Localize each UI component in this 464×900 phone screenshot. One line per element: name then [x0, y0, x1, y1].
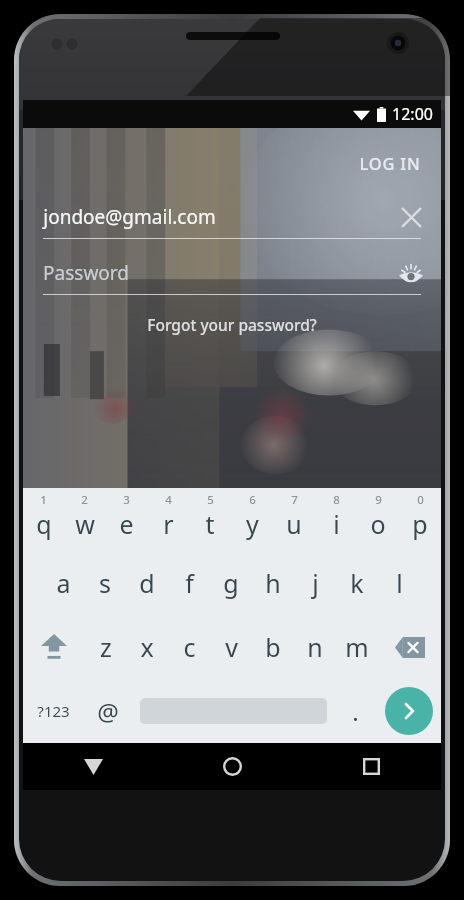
- button[interactable]: LOG IN: [343, 142, 437, 184]
- staticText: k: [350, 566, 364, 600]
- staticText: u: [286, 507, 302, 541]
- button[interactable]: Password: [23, 250, 441, 296]
- staticText: p: [412, 507, 428, 541]
- staticText: l: [396, 566, 403, 600]
- button[interactable]: Home: [163, 743, 302, 790]
- staticText: e: [119, 507, 134, 541]
- button[interactable]: n: [294, 615, 336, 679]
- staticText: 4: [165, 492, 172, 508]
- button[interactable]: x: [126, 615, 168, 679]
- staticText: m: [345, 630, 369, 664]
- staticText: o: [370, 507, 386, 541]
- button[interactable]: Recents: [302, 743, 441, 790]
- button[interactable]: d: [126, 551, 168, 615]
- button[interactable]: 1: [23, 488, 64, 551]
- staticText: s: [99, 566, 111, 600]
- button[interactable]: Go: [376, 679, 441, 743]
- button[interactable]: Shift: [23, 615, 85, 679]
- staticText: z: [100, 630, 112, 664]
- button[interactable]: Clear email: [389, 195, 433, 239]
- button[interactable]: z: [85, 615, 126, 679]
- staticText: ?123: [37, 701, 70, 721]
- button[interactable]: l: [378, 551, 420, 615]
- button[interactable]: 2: [64, 488, 105, 551]
- staticText: j: [312, 566, 319, 600]
- staticText: 3: [123, 492, 130, 508]
- staticText: 9: [375, 492, 382, 508]
- staticText: 8: [333, 492, 340, 508]
- staticText: b: [265, 630, 281, 664]
- button[interactable]: m: [336, 615, 378, 679]
- button[interactable]: h: [252, 551, 294, 615]
- staticText: v: [225, 630, 238, 664]
- button[interactable]: [132, 679, 335, 743]
- button[interactable]: j: [294, 551, 336, 615]
- staticText: w: [75, 507, 95, 541]
- button[interactable]: 4: [147, 488, 189, 551]
- staticText: @: [97, 695, 119, 728]
- staticText: q: [36, 507, 52, 541]
- staticText: t: [205, 507, 215, 541]
- button[interactable]: v: [210, 615, 252, 679]
- staticText: Forgot your password?: [147, 314, 317, 335]
- button[interactable]: k: [336, 551, 378, 615]
- button[interactable]: @: [83, 679, 132, 743]
- button[interactable]: ?123: [23, 679, 83, 743]
- button[interactable]: 7: [273, 488, 315, 551]
- button[interactable]: .: [335, 679, 376, 743]
- button[interactable]: jondoe@gmail.com: [23, 194, 441, 240]
- staticText: r: [163, 507, 174, 541]
- button[interactable]: s: [84, 551, 126, 615]
- button[interactable]: c: [168, 615, 210, 679]
- staticText: h: [265, 566, 281, 600]
- button[interactable]: Backspace: [378, 615, 441, 679]
- staticText: .: [352, 695, 359, 728]
- staticText: d: [139, 566, 155, 600]
- button[interactable]: b: [252, 615, 294, 679]
- button[interactable]: Back: [23, 743, 163, 790]
- button[interactable]: 6: [231, 488, 273, 551]
- staticText: x: [140, 630, 154, 664]
- staticText: f: [185, 566, 194, 600]
- staticText: 7: [291, 492, 298, 508]
- staticText: c: [183, 630, 196, 664]
- button[interactable]: 0: [399, 488, 441, 551]
- button[interactable]: 9: [357, 488, 399, 551]
- button[interactable]: Forgot your password?: [133, 306, 331, 343]
- staticText: 12:00: [392, 103, 433, 125]
- staticText: 0: [417, 492, 424, 508]
- button[interactable]: 5: [189, 488, 231, 551]
- button[interactable]: 8: [315, 488, 357, 551]
- staticText: a: [56, 566, 71, 600]
- staticText: 5: [207, 492, 214, 508]
- staticText: y: [246, 507, 259, 541]
- staticText: 2: [81, 492, 88, 508]
- staticText: 1: [40, 492, 47, 508]
- button[interactable]: f: [168, 551, 210, 615]
- staticText: jondoe@gmail.com: [43, 204, 216, 230]
- button[interactable]: Show password: [389, 251, 433, 295]
- staticText: n: [307, 630, 323, 664]
- button[interactable]: g: [210, 551, 252, 615]
- staticText: i: [333, 507, 340, 541]
- staticText: g: [223, 566, 239, 600]
- staticText: LOG IN: [359, 152, 421, 174]
- staticText: 6: [249, 492, 256, 508]
- button[interactable]: 3: [105, 488, 147, 551]
- button[interactable]: a: [43, 551, 84, 615]
- staticText: Password: [43, 260, 129, 286]
